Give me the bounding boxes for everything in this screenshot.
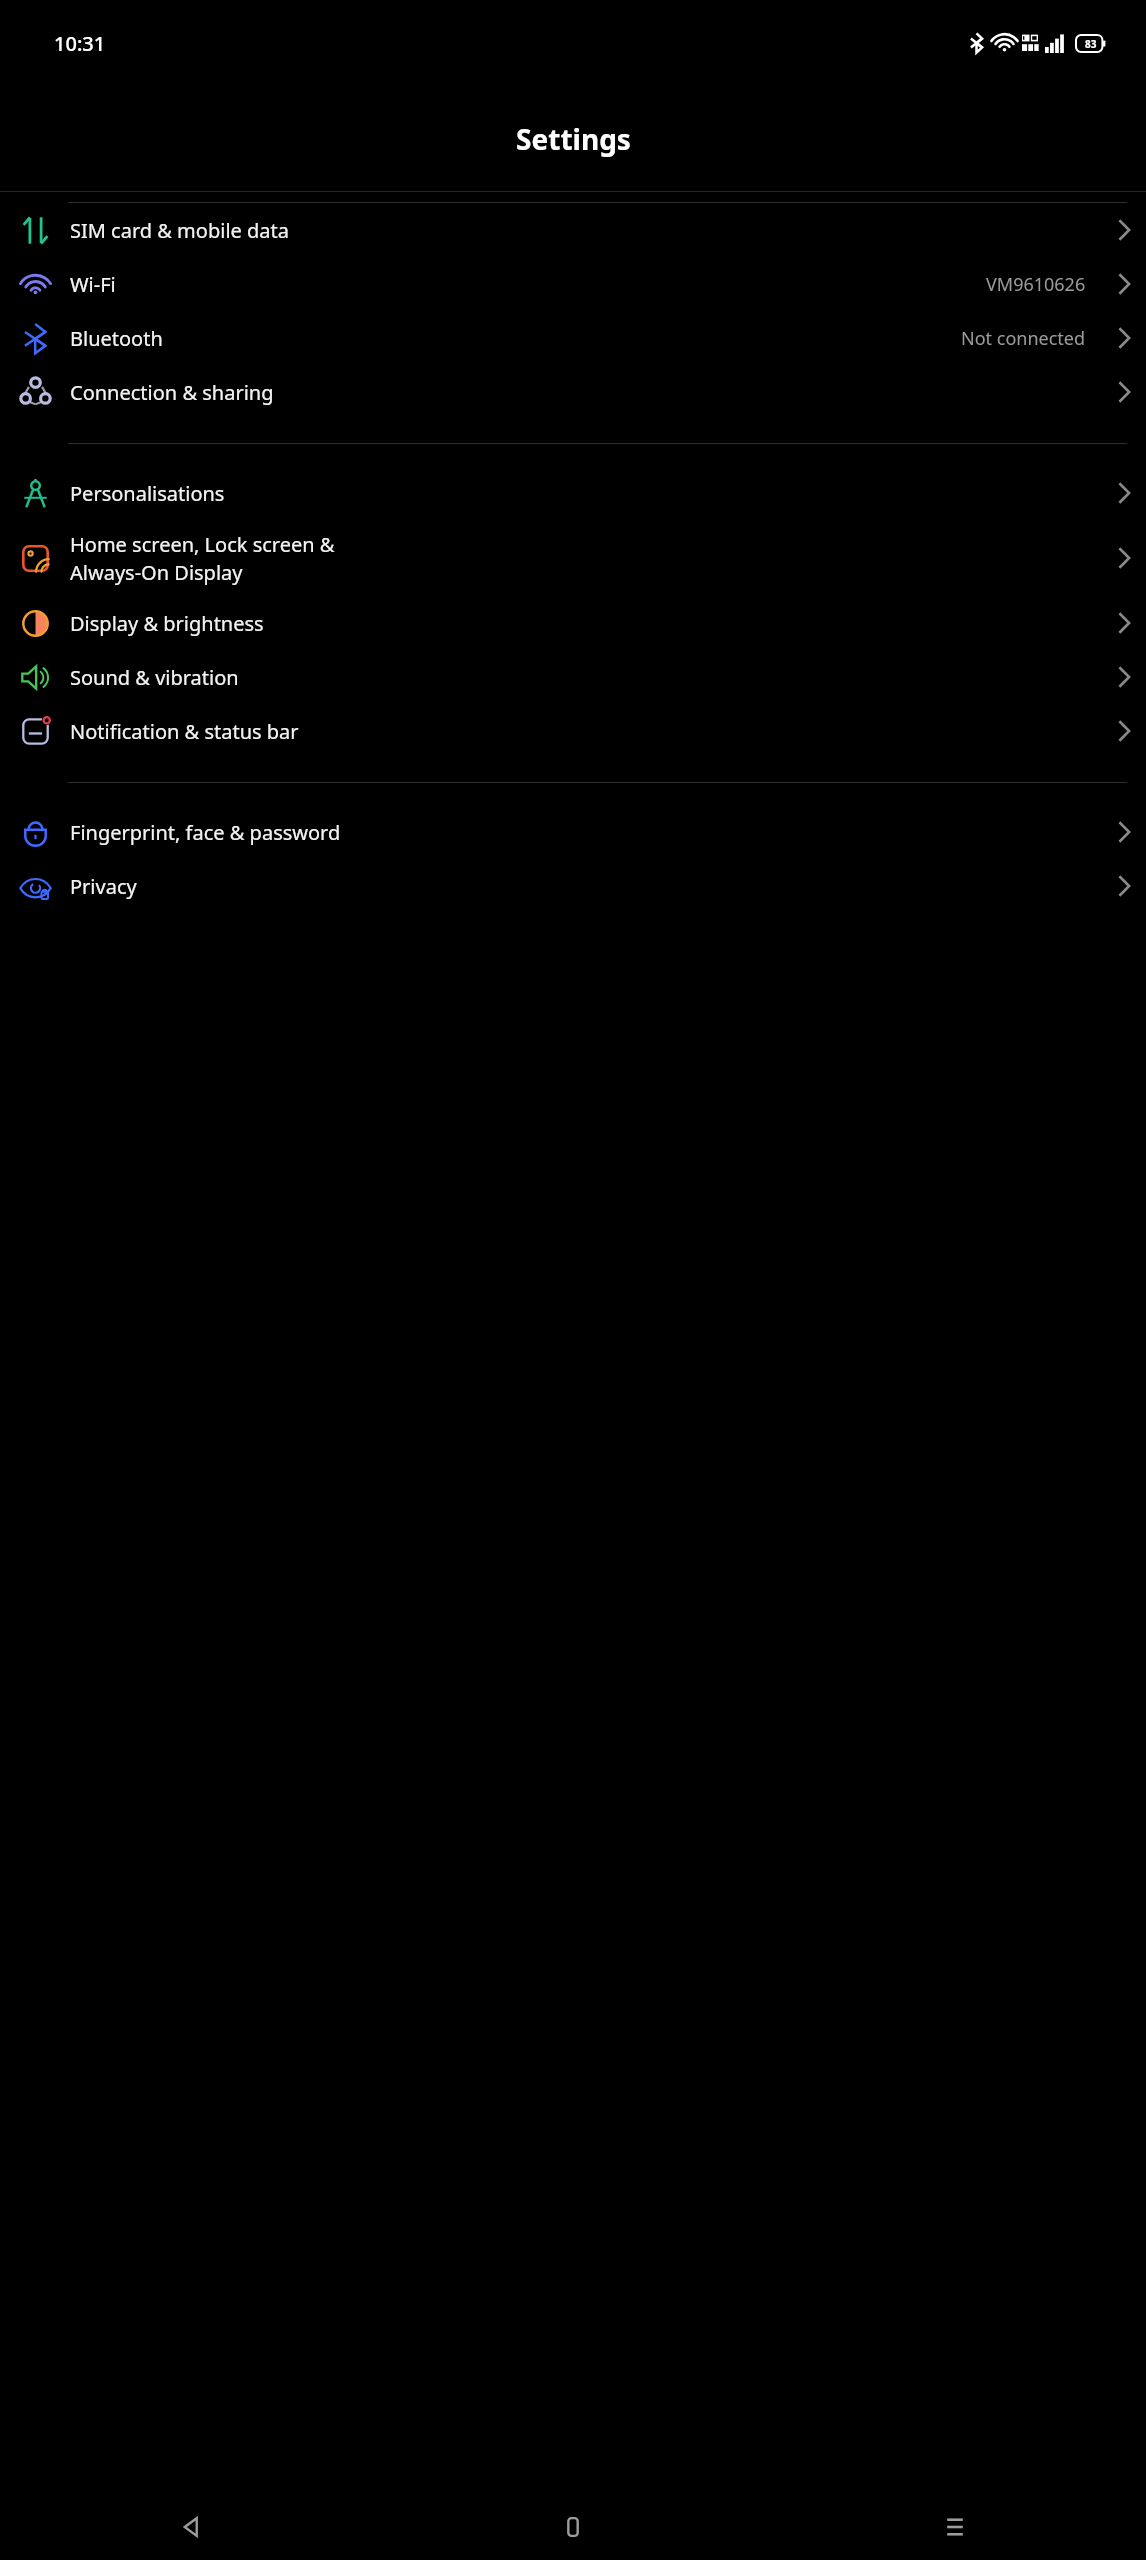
staticText: VM9610626 — [986, 272, 1086, 297]
staticText: Bluetooth — [70, 325, 953, 352]
button[interactable]: Display & brightness — [0, 596, 1146, 650]
staticText: Sound & vibration — [70, 664, 1094, 691]
button[interactable]: Recent apps — [764, 2494, 1146, 2560]
button[interactable]: Back — [0, 2494, 382, 2560]
button[interactable]: Home screen, Lock screen & Always-On Dis… — [0, 520, 1146, 596]
button[interactable]: Notification & status bar — [0, 704, 1146, 758]
staticText: SIM card & mobile data — [70, 217, 1094, 244]
staticText: Not connected — [961, 326, 1086, 351]
button[interactable]: Home — [382, 2494, 764, 2560]
staticText: Wi-Fi — [70, 271, 978, 298]
button[interactable]: Privacy — [0, 859, 1146, 913]
staticText: 10:31 — [54, 30, 106, 57]
staticText: Connection & sharing — [70, 379, 1094, 406]
staticText: Personalisations — [70, 480, 1094, 507]
button[interactable]: Personalisations — [0, 466, 1146, 520]
staticText: Notification & status bar — [70, 718, 1094, 745]
staticText: Settings — [516, 120, 631, 158]
button[interactable]: Bluetooth — [0, 311, 1146, 365]
staticText: Fingerprint, face & password — [70, 819, 1094, 846]
button[interactable]: Fingerprint, face & password — [0, 805, 1146, 859]
button[interactable]: SIM card & mobile data — [0, 203, 1146, 257]
staticText: 83 — [1085, 37, 1097, 51]
staticText: Display & brightness — [70, 610, 1094, 637]
staticText: Privacy — [70, 873, 1094, 900]
button[interactable]: Connection & sharing — [0, 365, 1146, 419]
staticText: Home screen, Lock screen & Always-On Dis… — [70, 531, 1094, 586]
button[interactable]: Sound & vibration — [0, 650, 1146, 704]
button[interactable]: Wi-Fi — [0, 257, 1146, 311]
